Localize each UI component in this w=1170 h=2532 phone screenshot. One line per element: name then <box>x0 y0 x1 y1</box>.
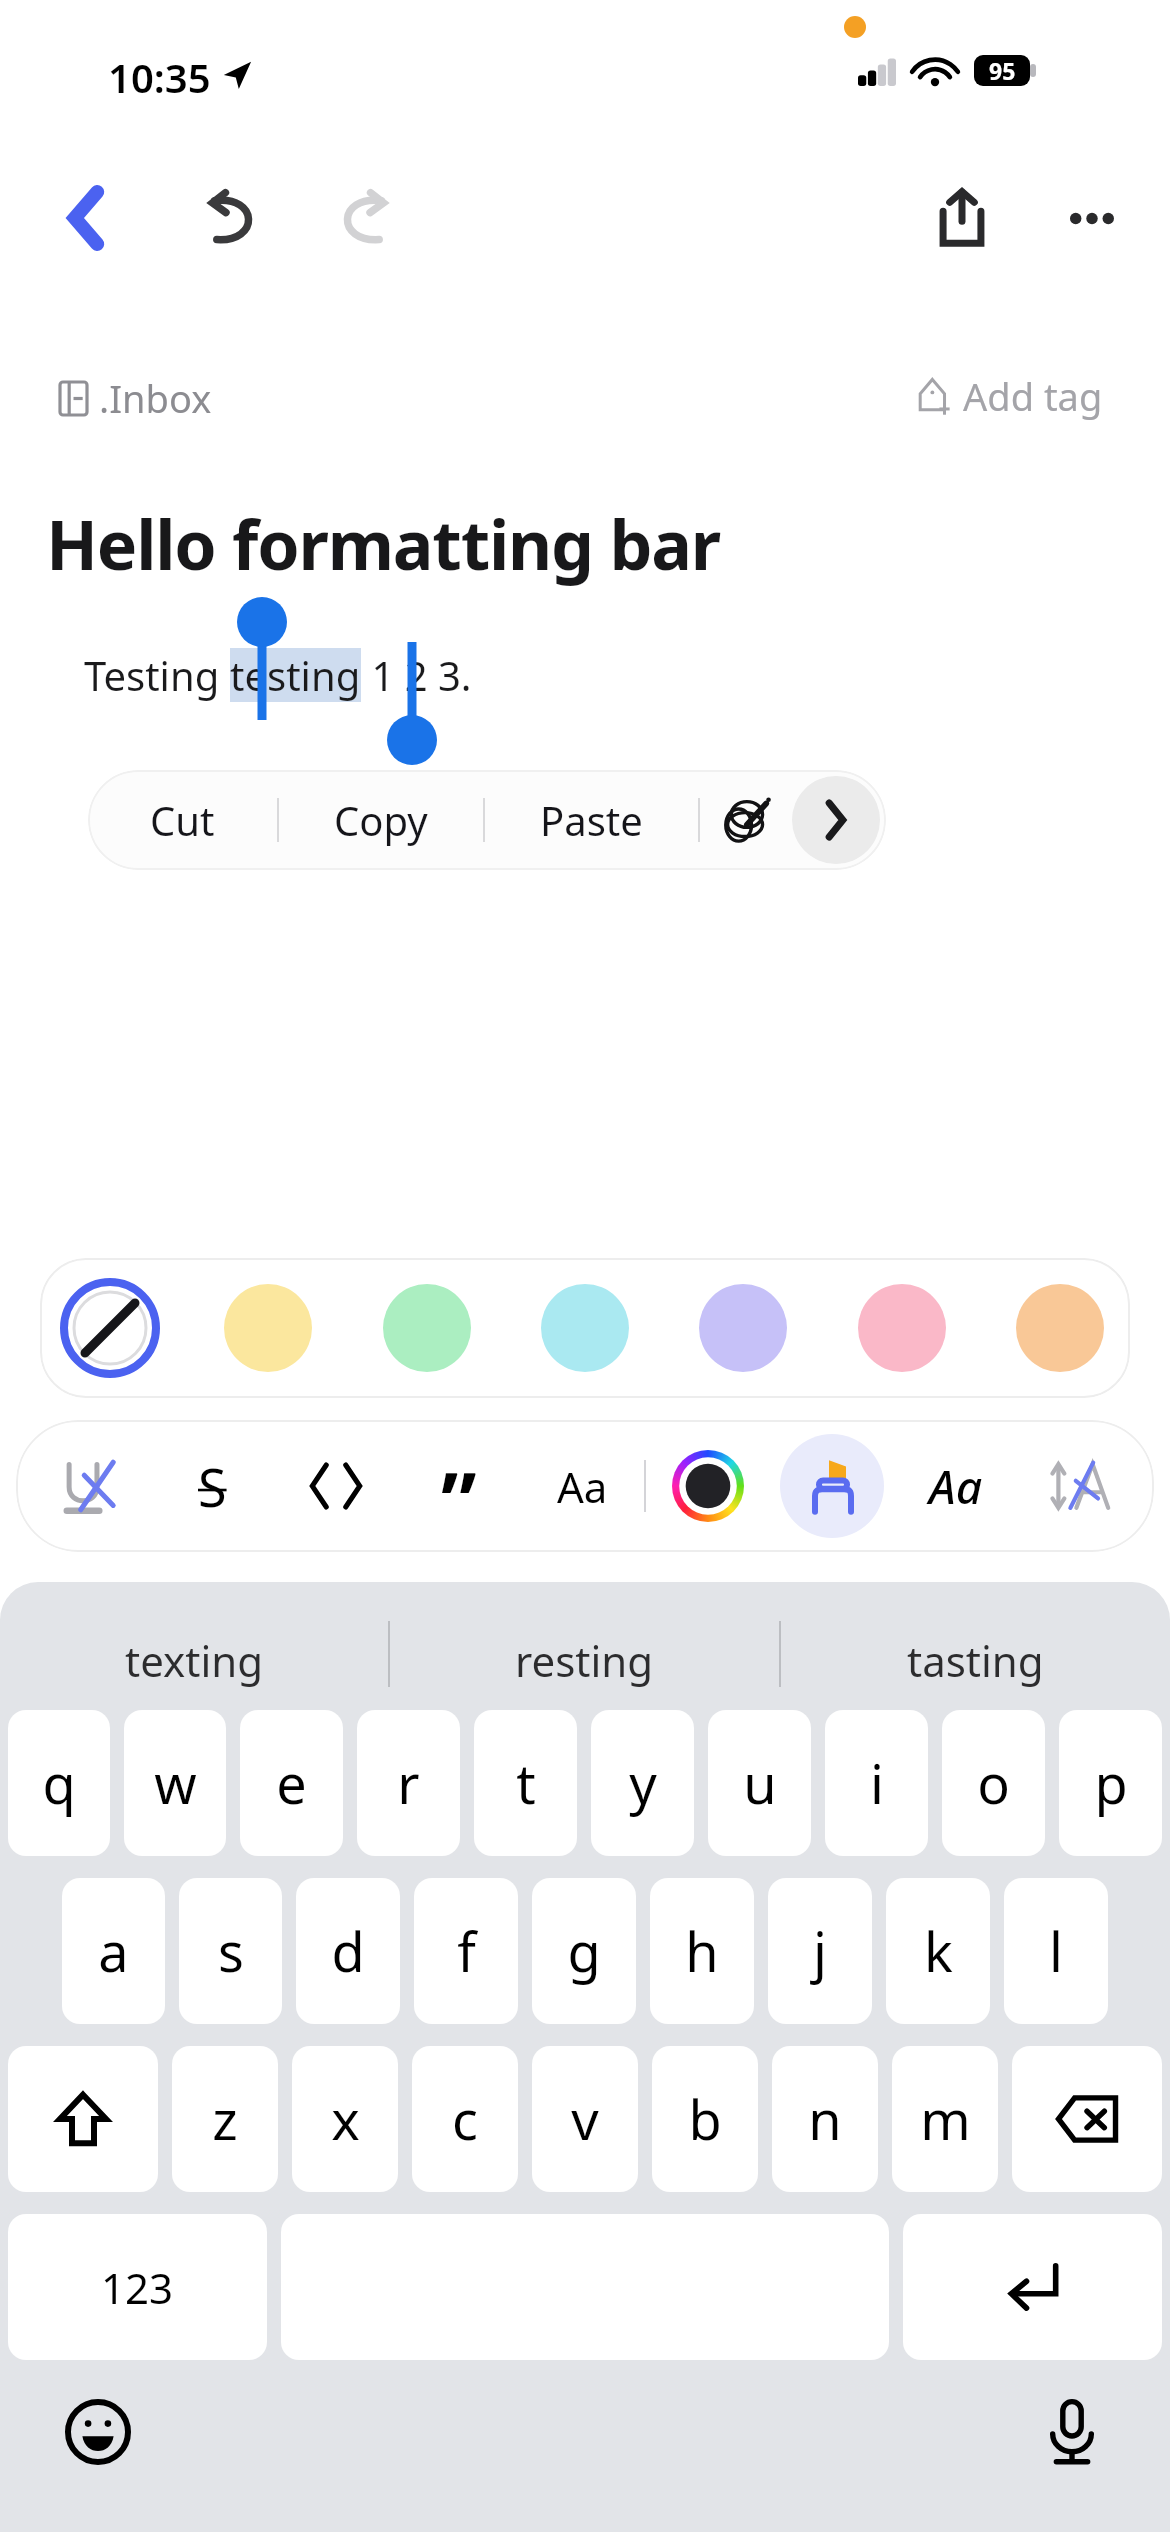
button[interactable]: Highlight colour <box>691 1276 795 1380</box>
button[interactable]: z <box>172 2046 278 2192</box>
button[interactable]: Code <box>274 1420 397 1552</box>
button[interactable]: Highlight colour <box>216 1276 320 1380</box>
button[interactable]: .Inbox <box>60 372 212 424</box>
staticText: s <box>218 1914 244 1988</box>
button[interactable]: texting <box>0 1582 388 1710</box>
button[interactable]: Highlight colour <box>850 1276 954 1380</box>
button[interactable]: Return <box>903 2214 1162 2360</box>
button[interactable]: i <box>825 1710 928 1856</box>
staticText: ” <box>441 1445 477 1552</box>
staticText: r <box>397 1746 420 1820</box>
button[interactable]: Highlight colour <box>375 1276 479 1380</box>
button[interactable]: h <box>650 1878 754 2024</box>
staticText: x <box>331 2082 360 2156</box>
staticText: k <box>924 1914 953 1988</box>
staticText: l <box>1049 1914 1063 1988</box>
staticText: texting <box>125 1632 264 1689</box>
button[interactable]: f <box>414 1878 518 2024</box>
button[interactable]: d <box>296 1878 400 2024</box>
button[interactable]: Add tag <box>917 370 1103 422</box>
button[interactable]: x <box>292 2046 398 2192</box>
button[interactable]: s <box>179 1878 282 2024</box>
button[interactable]: Text colour <box>646 1420 770 1552</box>
staticText: t <box>516 1746 536 1820</box>
staticText: 1 2 3. <box>361 648 472 702</box>
staticText: resting <box>515 1632 654 1689</box>
staticText: h <box>685 1914 719 1988</box>
staticText: Aa <box>929 1455 983 1518</box>
button[interactable]: g <box>532 1878 636 2024</box>
button[interactable]: o <box>942 1710 1045 1856</box>
button[interactable]: Quote <box>397 1420 520 1552</box>
button[interactable]: Numbers <box>8 2214 267 2360</box>
button[interactable]: Highlight colour <box>1008 1276 1112 1380</box>
button[interactable]: Backspace <box>1012 2046 1162 2192</box>
button[interactable]: Dictation <box>1022 2382 1122 2482</box>
button[interactable]: Paragraph style <box>520 1420 644 1552</box>
button[interactable]: y <box>591 1710 694 1856</box>
staticText: e <box>276 1746 307 1820</box>
staticText: 10:35 <box>108 50 211 104</box>
button[interactable]: Strikethrough <box>151 1420 274 1552</box>
button[interactable]: Copy <box>279 770 483 870</box>
button[interactable]: Paste <box>485 770 698 870</box>
staticText: i <box>870 1746 884 1820</box>
staticText: m <box>920 2082 971 2156</box>
staticText: p <box>1094 1746 1128 1820</box>
button[interactable]: resting <box>390 1582 779 1710</box>
button[interactable]: u <box>708 1710 811 1856</box>
staticText: w <box>154 1746 197 1820</box>
button[interactable]: More actions <box>792 776 880 864</box>
staticText: .Inbox <box>99 372 212 424</box>
button[interactable]: v <box>532 2046 638 2192</box>
button[interactable]: Emoji <box>48 2382 148 2482</box>
staticText: Aa <box>557 1458 608 1515</box>
button[interactable]: No highlight <box>58 1276 162 1380</box>
button[interactable]: p <box>1059 1710 1162 1856</box>
button[interactable]: Shift <box>8 2046 158 2192</box>
staticText: c <box>452 2082 478 2156</box>
button[interactable]: Underline off <box>28 1420 151 1552</box>
staticText: j <box>813 1914 827 1988</box>
button[interactable]: c <box>412 2046 518 2192</box>
button[interactable]: j <box>768 1878 872 2024</box>
staticText: Testing <box>84 648 230 702</box>
button[interactable]: l <box>1004 1878 1108 2024</box>
staticText: 95 <box>989 55 1016 86</box>
staticText: 123 <box>101 2259 174 2316</box>
button[interactable]: a <box>62 1878 165 2024</box>
button[interactable]: q <box>8 1710 110 1856</box>
button[interactable]: Back <box>36 168 136 268</box>
button[interactable]: e <box>240 1710 343 1856</box>
button[interactable]: Handwriting style <box>894 1420 1018 1552</box>
staticText: u <box>743 1746 777 1820</box>
button[interactable]: tasting <box>781 1582 1170 1710</box>
button[interactable]: Redo <box>313 168 413 268</box>
staticText: Copy <box>334 793 428 847</box>
button[interactable]: More options <box>1042 168 1142 268</box>
button[interactable]: Cut <box>88 770 277 870</box>
button[interactable]: n <box>772 2046 878 2192</box>
staticText: o <box>977 1746 1010 1820</box>
button[interactable]: w <box>124 1710 226 1856</box>
staticText: y <box>629 1746 657 1820</box>
staticText: S <box>198 1451 227 1522</box>
staticText: n <box>808 2082 842 2156</box>
staticText: f <box>457 1914 476 1988</box>
button[interactable]: Highlight colour <box>533 1276 637 1380</box>
button[interactable]: Highlighter <box>770 1420 894 1552</box>
staticText: testing <box>230 648 361 702</box>
staticText: g <box>567 1914 601 1988</box>
staticText: z <box>212 2082 238 2156</box>
button[interactable]: Undo <box>183 168 283 268</box>
button[interactable]: b <box>652 2046 758 2192</box>
button[interactable]: Share <box>912 168 1012 268</box>
button[interactable]: r <box>357 1710 460 1856</box>
staticText: Paste <box>540 793 643 847</box>
button[interactable]: t <box>474 1710 577 1856</box>
button[interactable]: m <box>892 2046 998 2192</box>
button[interactable]: k <box>886 1878 990 2024</box>
button[interactable]: Writing tools <box>700 770 792 870</box>
button[interactable]: Text size <box>1018 1420 1142 1552</box>
